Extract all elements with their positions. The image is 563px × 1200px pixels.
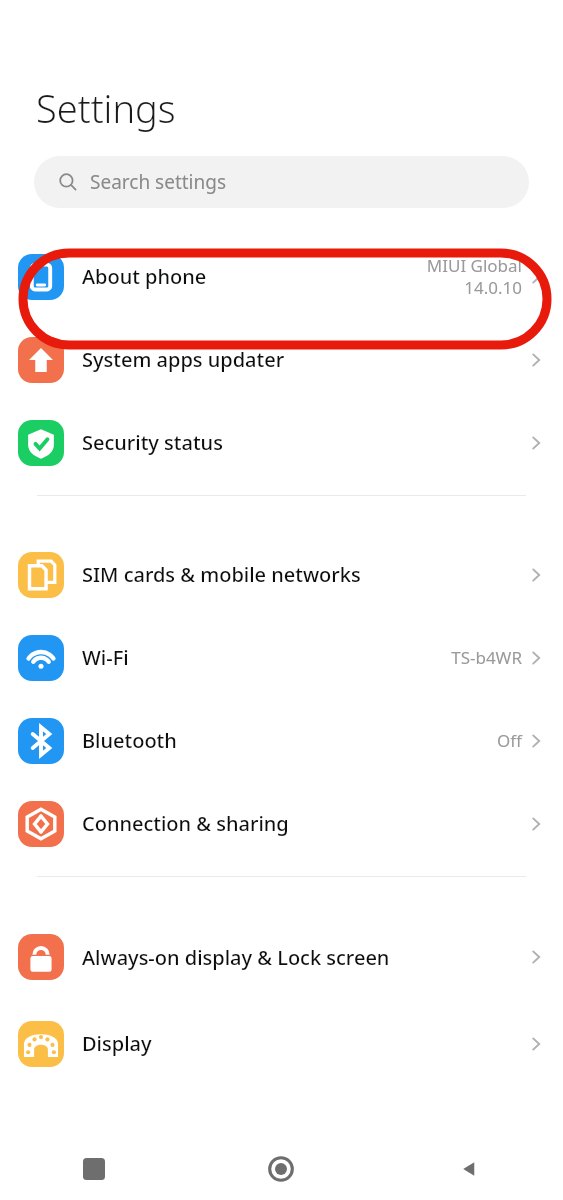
staticText: TS-b4WR bbox=[451, 646, 522, 669]
staticText: MIUI Global 14.0.10 bbox=[426, 254, 522, 299]
button[interactable]: Display bbox=[0, 1002, 563, 1085]
button[interactable]: System apps updater bbox=[0, 318, 563, 401]
staticText: Bluetooth bbox=[82, 727, 489, 754]
staticText: Display bbox=[82, 1030, 526, 1057]
staticText: Always-on display & Lock screen bbox=[82, 944, 526, 971]
button[interactable]: Connection & sharing bbox=[0, 782, 563, 865]
staticText: Search settings bbox=[90, 169, 227, 195]
button[interactable]: Home bbox=[187, 1138, 375, 1200]
button[interactable]: Security status bbox=[0, 401, 563, 484]
staticText: Settings bbox=[36, 82, 176, 134]
button[interactable]: Recent apps bbox=[0, 1138, 187, 1200]
button[interactable]: Bluetooth bbox=[0, 699, 563, 782]
staticText: Connection & sharing bbox=[82, 810, 526, 837]
button[interactable]: Always-on display & Lock screen bbox=[0, 912, 563, 1002]
staticText: System apps updater bbox=[82, 346, 526, 373]
staticText: About phone bbox=[82, 263, 418, 290]
button[interactable]: SIM cards & mobile networks bbox=[0, 533, 563, 616]
staticText: Off bbox=[497, 729, 522, 752]
button[interactable]: About phone bbox=[0, 235, 563, 318]
staticText: SIM cards & mobile networks bbox=[82, 561, 526, 588]
button[interactable]: Back bbox=[375, 1138, 563, 1200]
staticText: Wi-Fi bbox=[82, 644, 443, 671]
staticText: Security status bbox=[82, 429, 526, 456]
button[interactable]: Wi-Fi bbox=[0, 616, 563, 699]
button[interactable]: Search settings bbox=[34, 156, 529, 208]
